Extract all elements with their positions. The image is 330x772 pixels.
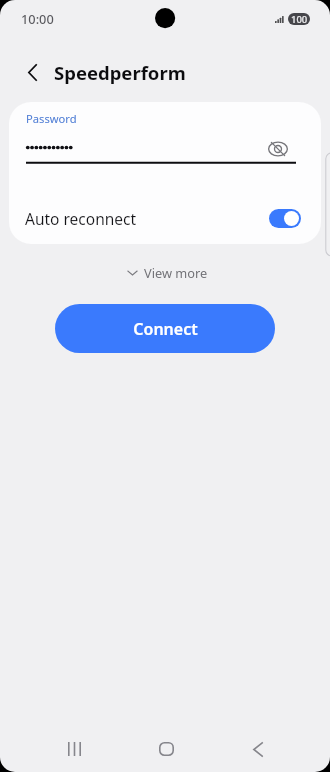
- staticText: Password: [26, 111, 77, 126]
- staticText: 100: [291, 13, 308, 25]
- staticText: Auto reconnect: [25, 208, 137, 229]
- staticText: Speedperform: [54, 60, 186, 85]
- button[interactable]: View more: [120, 260, 216, 285]
- button[interactable]: Connect: [55, 304, 275, 353]
- button[interactable]: Auto reconnect: [9, 195, 321, 241]
- staticText: 10:00: [21, 10, 54, 27]
- staticText: View more: [144, 264, 208, 281]
- button[interactable]: Recents: [52, 727, 96, 771]
- button[interactable]: Home: [144, 727, 188, 771]
- button[interactable]: Back: [19, 59, 45, 85]
- staticText: Connect: [133, 318, 198, 340]
- button[interactable]: Back: [236, 727, 280, 771]
- button[interactable]: Show password: [265, 136, 291, 162]
